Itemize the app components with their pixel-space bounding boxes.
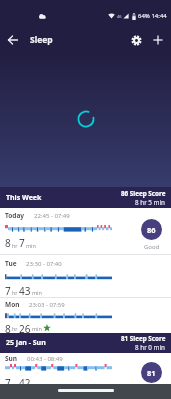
staticText: Today (5, 211, 25, 220)
staticText: hr (11, 242, 19, 249)
staticText: 22:45 - 07:49 (34, 212, 70, 220)
staticText: 86 (147, 225, 156, 235)
staticText: 8 hr 0 min (135, 343, 166, 352)
staticText: 8 (5, 322, 11, 333)
staticText: 25 Jan - Sun (6, 338, 46, 348)
button[interactable] (126, 30, 146, 50)
staticText: Sun (5, 354, 18, 363)
staticText: 43 (19, 284, 31, 297)
staticText: Good (144, 243, 160, 251)
staticText: This Week (6, 193, 42, 203)
staticText: min (25, 242, 36, 249)
staticText: 00:43 - 08:49 (27, 355, 63, 363)
staticText: min (31, 325, 42, 332)
staticText: 23:30 - 07:40 (26, 260, 62, 268)
staticText: 7 (5, 284, 11, 297)
staticText: 26 (19, 322, 31, 333)
button[interactable]: Today (0, 208, 171, 254)
button[interactable]: Tue (0, 255, 171, 297)
button[interactable]: Sun (0, 353, 171, 399)
staticText: 42 (19, 376, 31, 390)
staticText: 86 Sleep Score (121, 189, 166, 198)
staticText: Tue (5, 259, 17, 268)
staticText: Sleep (30, 34, 53, 46)
staticText: 81 (147, 368, 156, 378)
staticText: min (31, 289, 42, 296)
staticText: 23:03 - 07:59 (29, 301, 65, 309)
staticText: hr (11, 289, 19, 296)
staticText: 64% 14:44 (138, 12, 167, 20)
staticText: hr (11, 325, 19, 332)
staticText: 81 Sleep Score (121, 334, 166, 343)
button[interactable] (4, 31, 22, 49)
button[interactable]: Mon (0, 298, 171, 333)
staticText: Mon (5, 300, 20, 309)
staticText: 8 (5, 236, 11, 250)
staticText: hr (11, 382, 19, 389)
staticText: min (31, 382, 42, 389)
staticText: 46 (117, 14, 122, 19)
staticText: 8 hr 5 min (135, 198, 166, 207)
staticText: 7 (5, 376, 11, 390)
staticText: 7 (19, 236, 25, 250)
button[interactable] (148, 30, 168, 50)
